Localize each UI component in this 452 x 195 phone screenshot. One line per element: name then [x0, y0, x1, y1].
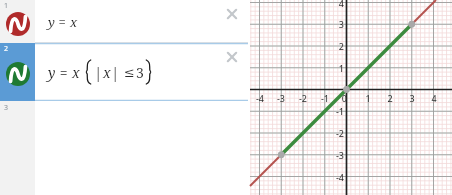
- staticText: y: [48, 63, 56, 82]
- staticText: =: [56, 63, 72, 82]
- button[interactable]: Graph of y = x: [250, 0, 452, 195]
- staticText: -1: [327, 105, 344, 117]
- staticText: ≤: [124, 65, 135, 80]
- button[interactable]: Toggle plot 2: [0, 43, 35, 101]
- staticText: 3: [4, 103, 9, 113]
- staticText: 1: [4, 1, 9, 11]
- staticText: x: [72, 63, 80, 82]
- button[interactable]: Toggle plot 2: [0, 43, 248, 101]
- staticText: x: [70, 13, 78, 31]
- staticText: |: [111, 62, 120, 82]
- staticText: -1: [316, 92, 334, 104]
- staticText: -2: [294, 92, 312, 104]
- button[interactable]: Delete expression 1: [224, 6, 240, 22]
- staticText: -4: [251, 92, 269, 104]
- staticText: -2: [327, 127, 344, 139]
- staticText: -4: [327, 171, 344, 183]
- staticText: |: [94, 62, 103, 82]
- staticText: x: [103, 63, 111, 82]
- staticText: -3: [327, 149, 344, 161]
- button[interactable]: Toggle plot 1: [0, 0, 248, 43]
- staticText: 0: [338, 92, 347, 104]
- staticText: 3: [403, 92, 421, 104]
- staticText: 3: [327, 18, 344, 30]
- staticText: 4: [425, 92, 443, 104]
- staticText: 2: [4, 44, 9, 54]
- staticText: 1: [327, 62, 344, 74]
- staticText: -3: [272, 92, 290, 104]
- staticText: 1: [359, 92, 377, 104]
- button[interactable]: y: [35, 0, 248, 43]
- staticText: 3: [136, 63, 144, 82]
- button[interactable]: y: [35, 43, 248, 101]
- button[interactable]: Toggle plot 1: [0, 0, 35, 43]
- staticText: y: [48, 13, 55, 31]
- staticText: 2: [381, 92, 399, 104]
- button[interactable]: Delete expression 2: [224, 49, 240, 65]
- staticText: =: [55, 13, 70, 31]
- staticText: 4: [327, 0, 344, 9]
- staticText: 2: [327, 40, 344, 52]
